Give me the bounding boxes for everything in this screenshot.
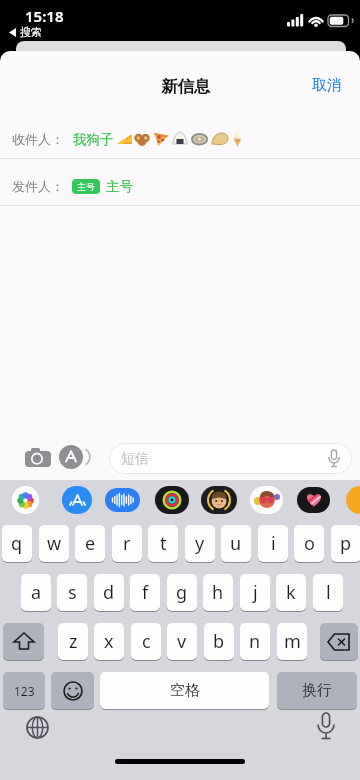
button[interactable]: e bbox=[75, 525, 105, 562]
button[interactable]: t bbox=[148, 525, 178, 562]
button[interactable]: v bbox=[167, 623, 197, 660]
staticText: z bbox=[69, 629, 78, 654]
staticText: 短信 bbox=[121, 450, 149, 468]
button[interactable]: j bbox=[240, 574, 270, 611]
staticText: q bbox=[11, 531, 23, 556]
button[interactable]: b bbox=[204, 623, 234, 660]
button[interactable] bbox=[12, 486, 39, 514]
staticText: t bbox=[160, 531, 167, 556]
button[interactable]: n bbox=[240, 623, 270, 660]
staticText: 发件人： bbox=[12, 178, 64, 194]
button[interactable]: p bbox=[331, 525, 360, 562]
staticText: 取消 bbox=[312, 76, 342, 95]
staticText: f bbox=[142, 580, 149, 605]
button[interactable]: q bbox=[2, 525, 32, 562]
button[interactable]: 空格 bbox=[100, 672, 269, 709]
button[interactable]: d bbox=[94, 574, 124, 611]
button[interactable]: s bbox=[57, 574, 87, 611]
button[interactable]: l bbox=[313, 574, 343, 611]
staticText: b bbox=[213, 629, 225, 654]
button[interactable]: w bbox=[39, 525, 69, 562]
staticText: 主号 bbox=[106, 178, 133, 195]
staticText: v bbox=[177, 629, 187, 654]
button[interactable]: 收件人： bbox=[12, 124, 360, 154]
button[interactable]: o bbox=[294, 525, 324, 562]
button[interactable] bbox=[25, 448, 51, 467]
button[interactable]: h bbox=[203, 574, 233, 611]
button[interactable]: 发件人： bbox=[12, 171, 360, 201]
button[interactable] bbox=[250, 486, 283, 514]
staticText: h bbox=[212, 580, 224, 605]
button[interactable] bbox=[297, 487, 330, 513]
staticText: o bbox=[304, 531, 315, 556]
staticText: y bbox=[195, 531, 205, 556]
staticText: s bbox=[68, 580, 77, 605]
button[interactable]: a bbox=[21, 574, 51, 611]
staticText: r bbox=[123, 531, 131, 556]
button[interactable] bbox=[62, 486, 92, 514]
staticText: 收件人： bbox=[12, 131, 64, 147]
staticText: j bbox=[253, 580, 258, 605]
button[interactable] bbox=[317, 713, 335, 741]
button[interactable]: x bbox=[94, 623, 124, 660]
button[interactable] bbox=[155, 486, 189, 514]
button[interactable]: k bbox=[276, 574, 306, 611]
button[interactable]: 123 bbox=[3, 672, 45, 709]
staticText: l bbox=[326, 580, 331, 605]
staticText: w bbox=[47, 531, 62, 556]
staticText: 主号 bbox=[77, 181, 95, 192]
staticText: 123 bbox=[14, 683, 35, 699]
staticText: 搜索 bbox=[20, 25, 42, 39]
button[interactable]: 换行 bbox=[277, 672, 357, 709]
button[interactable] bbox=[59, 445, 83, 469]
staticText: 换行 bbox=[302, 681, 332, 700]
staticText: d bbox=[103, 580, 115, 605]
button[interactable]: c bbox=[131, 623, 161, 660]
button[interactable]: 取消 bbox=[312, 76, 342, 95]
staticText: p bbox=[340, 531, 352, 556]
staticText: i bbox=[271, 531, 276, 556]
staticText: x bbox=[104, 629, 114, 654]
staticText: c bbox=[142, 629, 151, 654]
staticText: m bbox=[284, 629, 301, 654]
staticText: a bbox=[31, 580, 42, 605]
staticText: 15:18 bbox=[25, 6, 64, 26]
button[interactable]: y bbox=[185, 525, 215, 562]
button[interactable]: m bbox=[277, 623, 307, 660]
staticText: 新信息 bbox=[161, 76, 211, 97]
button[interactable]: f bbox=[130, 574, 160, 611]
button[interactable] bbox=[3, 623, 44, 660]
staticText: 空格 bbox=[170, 681, 200, 700]
staticText: k bbox=[286, 580, 296, 605]
button[interactable] bbox=[105, 488, 140, 512]
staticText: g bbox=[176, 580, 188, 605]
button[interactable]: g bbox=[167, 574, 197, 611]
button[interactable]: 短信 bbox=[109, 443, 352, 474]
staticText: e bbox=[85, 531, 96, 556]
button[interactable]: i bbox=[258, 525, 288, 562]
button[interactable] bbox=[201, 486, 237, 514]
button[interactable] bbox=[51, 672, 94, 709]
button[interactable] bbox=[320, 623, 358, 660]
staticText: 我狗子 bbox=[73, 131, 114, 148]
staticText: u bbox=[230, 531, 242, 556]
button[interactable] bbox=[26, 716, 49, 739]
button[interactable]: z bbox=[58, 623, 88, 660]
button[interactable]: r bbox=[112, 525, 142, 562]
staticText: n bbox=[249, 629, 261, 654]
button[interactable]: u bbox=[221, 525, 251, 562]
